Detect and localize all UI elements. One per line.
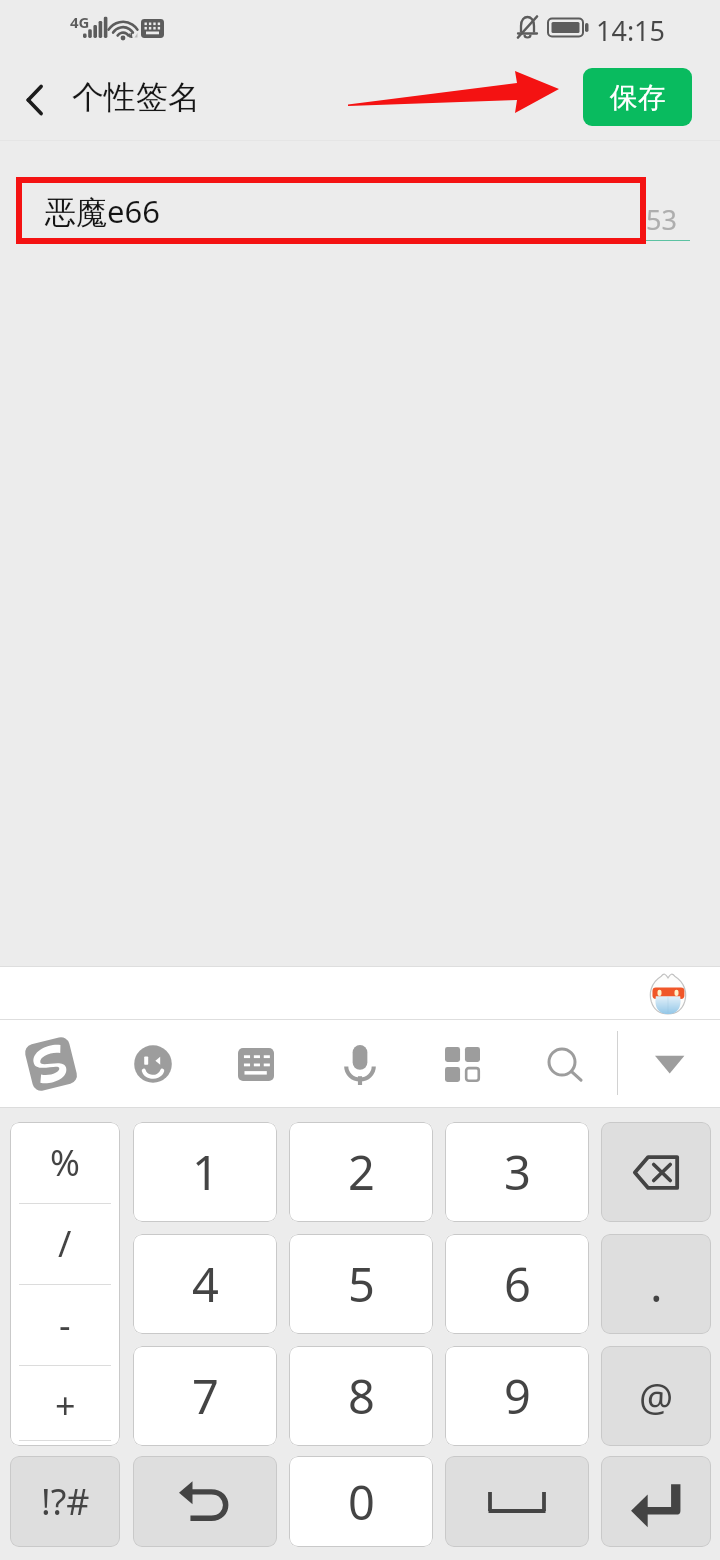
button[interactable]: 8 — [289, 1346, 433, 1446]
button[interactable]: Enter — [601, 1456, 711, 1547]
staticText: 6 — [504, 1252, 531, 1316]
button[interactable]: 2 — [289, 1122, 433, 1222]
button[interactable]: 4 — [133, 1234, 277, 1334]
button[interactable]: - — [10, 1284, 120, 1365]
button[interactable]: Search — [545, 1043, 585, 1083]
button[interactable]: % — [10, 1122, 120, 1203]
button[interactable]: Voice input — [344, 1045, 376, 1085]
staticText: 5 — [348, 1252, 375, 1316]
button[interactable]: 9 — [445, 1346, 589, 1446]
button[interactable]: 7 — [133, 1346, 277, 1446]
button[interactable]: 5 — [289, 1234, 433, 1334]
button[interactable]: Keyboard layout — [238, 1048, 274, 1081]
staticText: 9 — [504, 1364, 531, 1428]
staticText: + — [55, 1381, 76, 1430]
staticText: 53 — [646, 201, 677, 238]
staticText: @ — [639, 1370, 674, 1422]
staticText: 保存 — [610, 80, 666, 115]
staticText: . — [650, 1252, 663, 1316]
staticText: 2 — [348, 1140, 375, 1204]
staticText: 14:15 — [596, 12, 666, 49]
button[interactable]: / — [10, 1203, 120, 1284]
button[interactable]: More tools — [445, 1047, 480, 1082]
staticText: 1 — [192, 1140, 219, 1204]
staticText: 恶魔e66 — [45, 190, 160, 232]
button[interactable]: Back — [6, 62, 64, 138]
staticText: 8 — [348, 1364, 375, 1428]
button[interactable]: 保存 — [583, 68, 692, 126]
button[interactable]: 3 — [445, 1122, 589, 1222]
staticText: % — [50, 1138, 80, 1187]
button[interactable]: @ — [601, 1346, 711, 1446]
staticText: 4 — [192, 1252, 219, 1316]
staticText: 0 — [348, 1470, 375, 1534]
button[interactable]: . — [601, 1234, 711, 1334]
button[interactable]: Undo — [133, 1456, 277, 1547]
button[interactable]: 恶魔e66 — [45, 177, 640, 244]
button[interactable]: Backspace — [601, 1122, 711, 1222]
button[interactable]: Hide keyboard — [640, 1040, 700, 1088]
button[interactable]: 6 — [445, 1234, 589, 1334]
button[interactable]: Space — [445, 1456, 589, 1547]
button[interactable]: Emoji — [133, 1044, 173, 1084]
button[interactable]: Sogou input method — [24, 1037, 78, 1091]
staticText: 7 — [192, 1364, 219, 1428]
staticText: 3 — [504, 1140, 531, 1204]
staticText: !?# — [41, 1477, 90, 1526]
button[interactable]: 1 — [133, 1122, 277, 1222]
button[interactable]: 0 — [289, 1456, 433, 1547]
staticText: 4G — [70, 12, 90, 32]
button[interactable]: + — [10, 1365, 120, 1446]
staticText: - — [59, 1300, 71, 1349]
staticText: / — [58, 1219, 72, 1268]
staticText: 个性签名 — [72, 77, 200, 117]
button[interactable]: !?# — [10, 1456, 120, 1547]
